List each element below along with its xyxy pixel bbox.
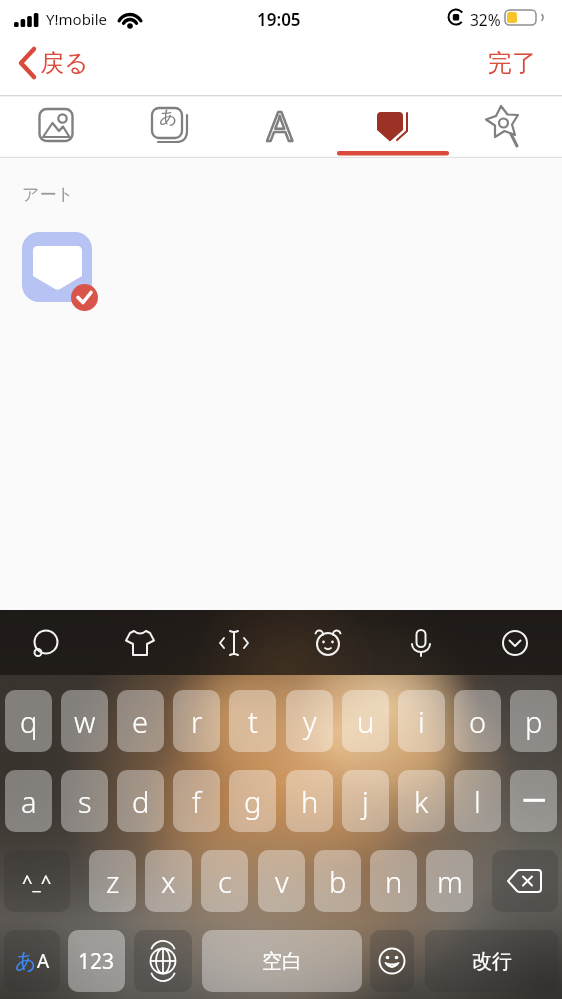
staticText: 32% xyxy=(470,9,501,30)
button[interactable]: w xyxy=(61,690,108,752)
staticText: i xyxy=(418,702,425,741)
button[interactable]: s xyxy=(61,770,108,832)
button[interactable]: u xyxy=(342,690,389,752)
button[interactable]: e xyxy=(117,690,164,752)
staticText: あ xyxy=(159,106,178,129)
staticText: a xyxy=(21,782,37,821)
staticText: k xyxy=(414,782,429,821)
button[interactable]: b xyxy=(314,850,361,912)
button[interactable]: 空白 xyxy=(202,930,362,992)
staticText: x xyxy=(161,862,176,901)
button[interactable]: j xyxy=(342,770,389,832)
staticText: r xyxy=(191,702,203,741)
staticText: 19:05 xyxy=(257,8,301,31)
staticText: h xyxy=(301,782,319,821)
button[interactable]: n xyxy=(370,850,417,912)
button[interactable]: a xyxy=(5,770,52,832)
staticText: あ xyxy=(15,948,37,974)
staticText: アート xyxy=(22,184,74,205)
button[interactable]: y xyxy=(286,690,333,752)
button[interactable] xyxy=(93,610,186,675)
staticText: v xyxy=(275,862,289,901)
staticText: m xyxy=(437,862,463,901)
button[interactable]: 123 xyxy=(68,930,125,992)
staticText: ー xyxy=(521,785,547,818)
button[interactable] xyxy=(370,930,414,992)
button[interactable]: x xyxy=(145,850,192,912)
staticText: u xyxy=(357,702,375,741)
button[interactable]: m xyxy=(426,850,473,912)
button[interactable]: ー xyxy=(510,770,557,832)
staticText: t xyxy=(248,702,258,741)
button[interactable]: q xyxy=(5,690,52,752)
button[interactable] xyxy=(374,610,468,675)
staticText: w xyxy=(74,702,96,741)
staticText: A xyxy=(267,98,293,152)
staticText: s xyxy=(78,782,92,821)
button[interactable] xyxy=(280,610,374,675)
button[interactable]: i xyxy=(398,690,445,752)
button[interactable]: c xyxy=(201,850,248,912)
button[interactable]: d xyxy=(117,770,164,832)
button[interactable]: h xyxy=(286,770,333,832)
button[interactable] xyxy=(226,95,338,158)
button[interactable]: f xyxy=(173,770,220,832)
staticText: 123 xyxy=(78,947,115,976)
staticText: o xyxy=(469,702,487,741)
button[interactable]: 完了 xyxy=(480,48,550,88)
button[interactable] xyxy=(450,95,562,158)
staticText: l xyxy=(474,782,481,821)
button[interactable]: l xyxy=(454,770,501,832)
staticText: j xyxy=(362,782,369,821)
staticText: y xyxy=(303,702,317,741)
staticText: ^_^ xyxy=(22,869,52,894)
button[interactable] xyxy=(338,95,450,158)
button[interactable]: 改行 xyxy=(425,930,558,992)
staticText: g xyxy=(244,782,262,821)
button[interactable] xyxy=(0,95,113,158)
staticText: c xyxy=(218,862,232,901)
button[interactable]: ^_^ xyxy=(4,850,70,912)
button[interactable]: g xyxy=(229,770,276,832)
button[interactable] xyxy=(468,610,562,675)
button[interactable] xyxy=(186,610,280,675)
button[interactable] xyxy=(113,95,226,158)
button[interactable]: k xyxy=(398,770,445,832)
button[interactable] xyxy=(492,850,558,912)
button[interactable]: r xyxy=(173,690,220,752)
staticText: d xyxy=(132,782,150,821)
button[interactable] xyxy=(0,610,93,675)
staticText: Y!mobile xyxy=(46,9,108,29)
staticText: b xyxy=(329,862,347,901)
button[interactable]: o xyxy=(454,690,501,752)
staticText: z xyxy=(106,862,120,901)
staticText: q xyxy=(20,702,38,741)
button[interactable]: v xyxy=(258,850,305,912)
button[interactable]: あ xyxy=(4,930,60,992)
button[interactable]: z xyxy=(89,850,136,912)
button[interactable]: 戻る xyxy=(12,46,112,90)
staticText: 完了 xyxy=(488,48,536,78)
staticText: e xyxy=(132,702,149,741)
button[interactable] xyxy=(22,232,108,318)
staticText: 改行 xyxy=(472,949,512,974)
staticText: A xyxy=(37,948,50,974)
staticText: 空白 xyxy=(262,949,302,974)
staticText: p xyxy=(525,702,543,741)
staticText: 戻る xyxy=(40,48,89,78)
staticText: f xyxy=(192,782,201,821)
button[interactable] xyxy=(134,930,192,992)
button[interactable]: t xyxy=(229,690,276,752)
button[interactable]: p xyxy=(510,690,557,752)
staticText: n xyxy=(385,862,403,901)
